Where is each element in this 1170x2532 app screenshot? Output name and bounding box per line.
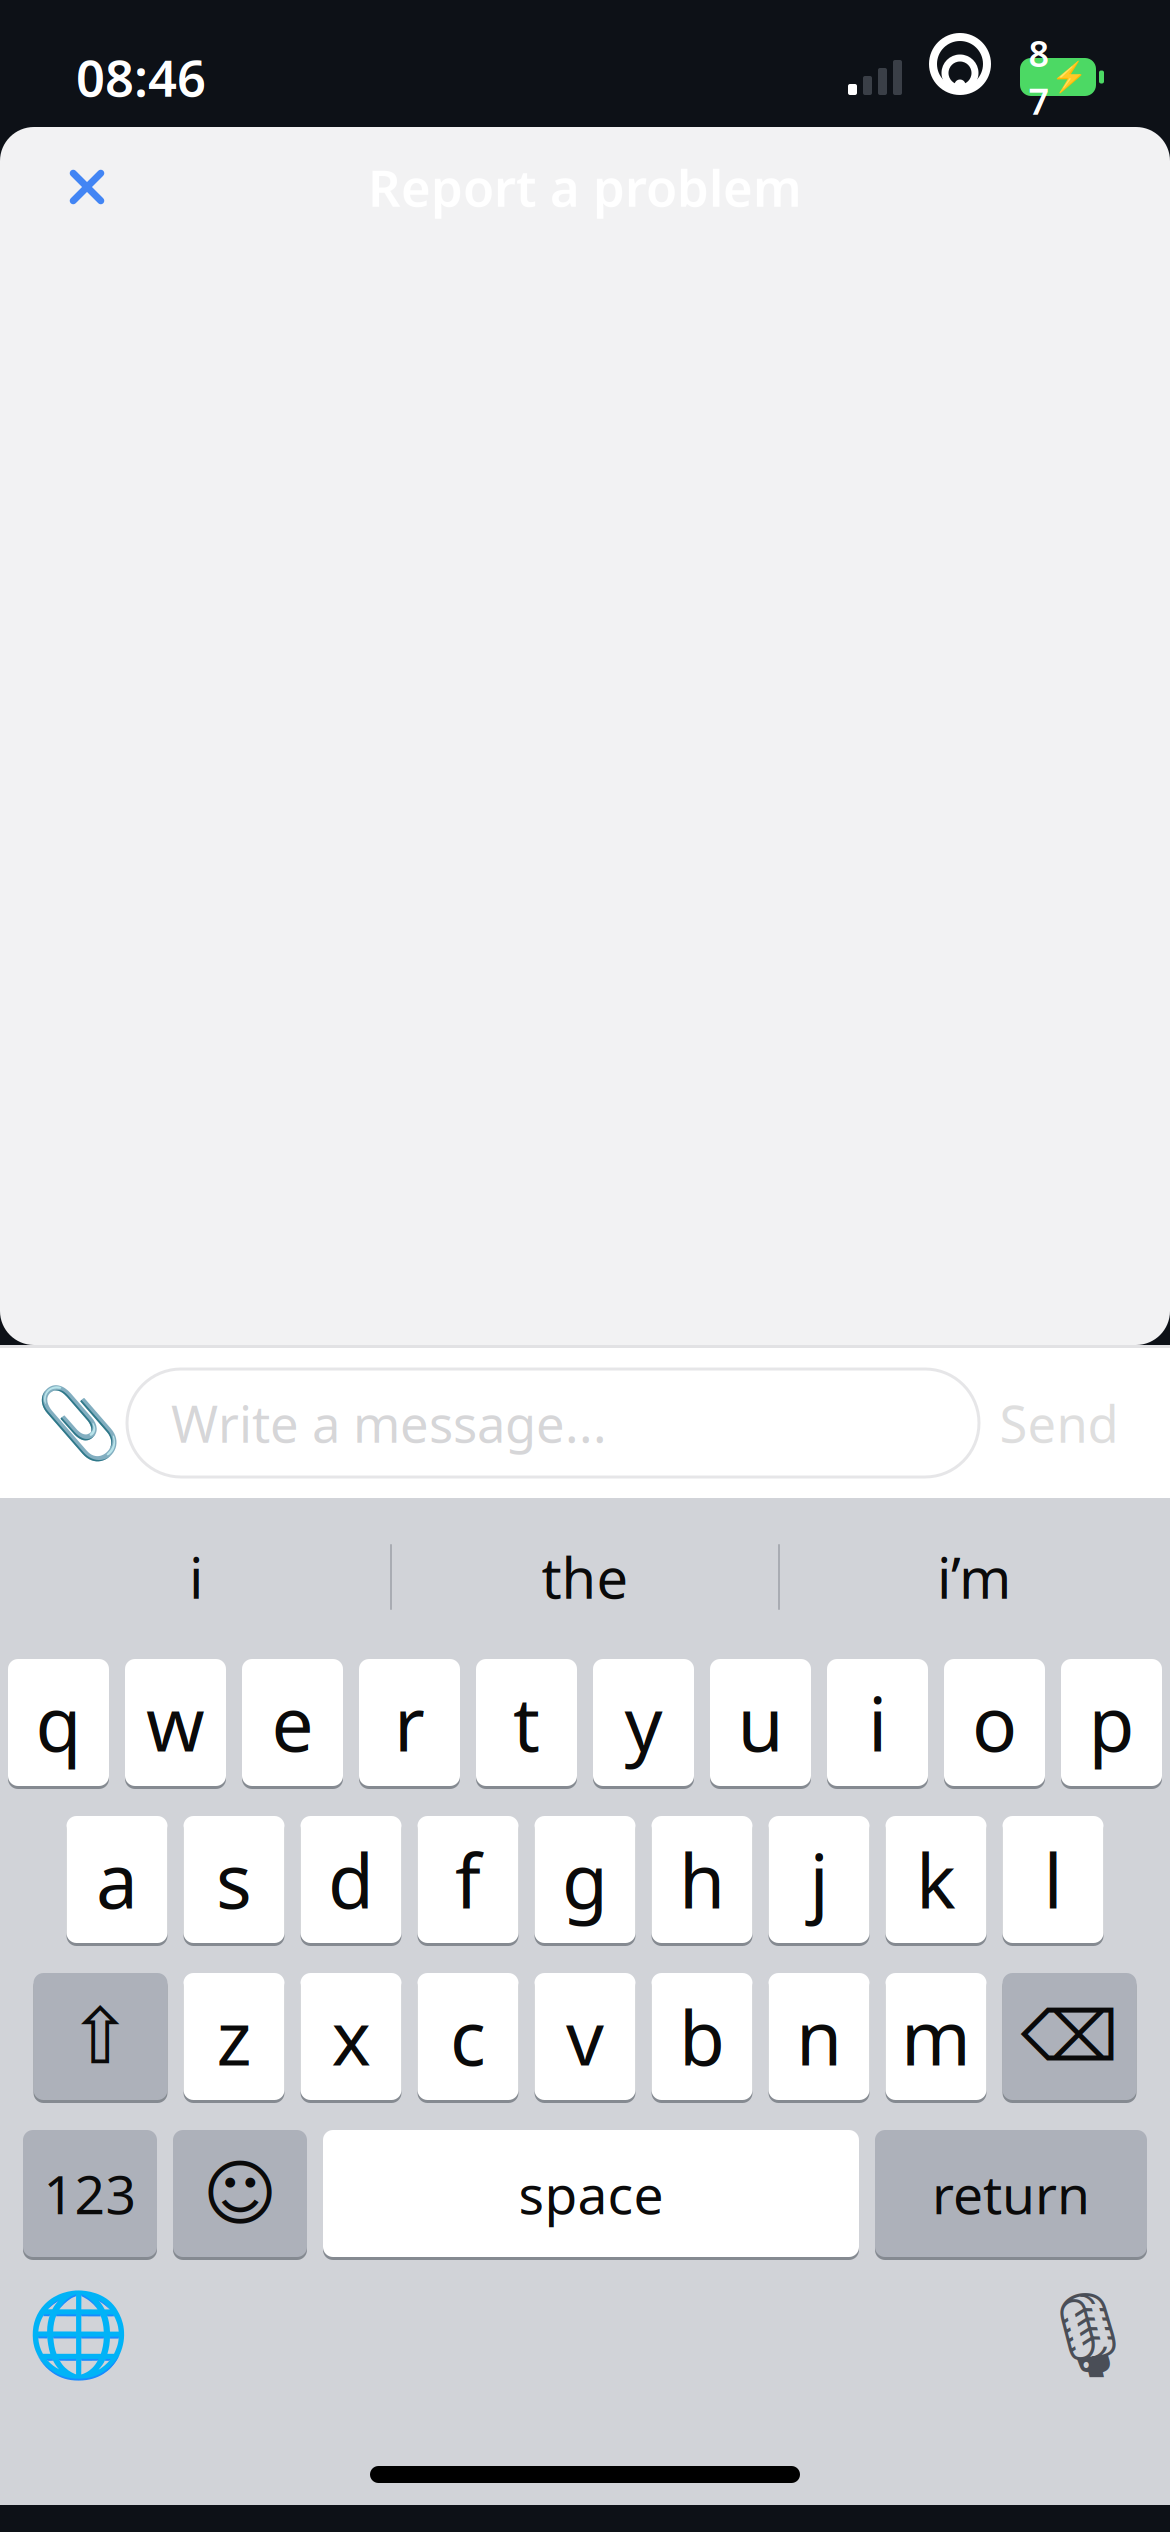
button[interactable]: d xyxy=(300,1813,401,1946)
button[interactable]: q xyxy=(8,1656,109,1789)
staticText: Send xyxy=(999,1389,1118,1457)
staticText: 📎 xyxy=(36,1383,122,1463)
button[interactable]: Attach file xyxy=(31,1375,127,1471)
staticText: l xyxy=(1043,1830,1062,1929)
button[interactable]: r xyxy=(359,1656,460,1789)
button[interactable]: o xyxy=(944,1656,1045,1789)
staticText: z xyxy=(216,1987,251,2086)
staticText: space xyxy=(518,2158,663,2229)
staticText: b xyxy=(679,1987,725,2086)
button[interactable]: Dictate xyxy=(1028,2275,1148,2395)
button[interactable]: x xyxy=(300,1970,401,2103)
button[interactable]: Shift xyxy=(33,1970,167,2103)
button[interactable]: v xyxy=(534,1970,635,2103)
button[interactable]: g xyxy=(534,1813,635,1946)
staticText: a xyxy=(96,1830,138,1929)
button[interactable]: k xyxy=(885,1813,986,1946)
staticText: k xyxy=(916,1830,956,1929)
staticText: t xyxy=(513,1673,540,1772)
button[interactable]: b xyxy=(651,1970,752,2103)
button[interactable]: i’m xyxy=(780,1527,1168,1627)
staticText: w xyxy=(146,1673,205,1772)
staticText: r xyxy=(394,1673,425,1772)
staticText: Report a problem xyxy=(368,153,802,221)
staticText: Write a message... xyxy=(171,1389,607,1457)
staticText: d xyxy=(328,1830,374,1929)
button[interactable]: Delete xyxy=(1002,1970,1136,2103)
staticText: v xyxy=(566,1987,604,2086)
button[interactable]: Close xyxy=(44,144,130,230)
button[interactable]: a xyxy=(66,1813,167,1946)
button[interactable]: e xyxy=(242,1656,343,1789)
staticText: ⇧ xyxy=(68,1993,133,2080)
staticText: j xyxy=(809,1830,828,1929)
button[interactable]: Send xyxy=(979,1375,1139,1471)
staticText: n xyxy=(796,1987,842,2086)
staticText: y xyxy=(624,1673,662,1772)
staticText: ⌫ xyxy=(1020,1997,1118,2076)
button[interactable]: the xyxy=(392,1527,778,1627)
button[interactable]: t xyxy=(476,1656,577,1789)
button[interactable]: ☺ xyxy=(173,2127,307,2260)
staticText: h xyxy=(679,1830,725,1929)
staticText: 87 xyxy=(1028,29,1049,125)
button[interactable]: c xyxy=(417,1970,518,2103)
staticText: c xyxy=(450,1987,486,2086)
staticText: g xyxy=(562,1830,608,1929)
staticText: 08:46 xyxy=(76,43,206,111)
staticText: f xyxy=(455,1830,481,1929)
staticText: the xyxy=(541,1540,628,1614)
button[interactable]: Write a message... xyxy=(127,1369,979,1477)
staticText: i xyxy=(189,1540,203,1614)
button[interactable]: h xyxy=(651,1813,752,1946)
button[interactable]: return xyxy=(875,2127,1147,2260)
staticText: s xyxy=(216,1830,252,1929)
button[interactable]: i xyxy=(2,1527,390,1627)
staticText: return xyxy=(932,2158,1090,2229)
staticText: 🎙 xyxy=(1035,2288,1140,2382)
button[interactable]: l xyxy=(1002,1813,1103,1946)
button[interactable]: Change keyboard xyxy=(18,2275,138,2395)
staticText: e xyxy=(271,1673,313,1772)
button[interactable]: z xyxy=(183,1970,284,2103)
button[interactable]: p xyxy=(1061,1656,1162,1789)
button[interactable]: y xyxy=(593,1656,694,1789)
button[interactable]: m xyxy=(885,1970,986,2103)
button[interactable]: space xyxy=(323,2127,859,2260)
staticText: x xyxy=(331,1987,370,2086)
button[interactable]: n xyxy=(768,1970,869,2103)
staticText: q xyxy=(35,1673,81,1772)
button[interactable]: i xyxy=(827,1656,928,1789)
staticText: 123 xyxy=(43,2158,136,2229)
staticText: p xyxy=(1088,1673,1134,1772)
staticText: o xyxy=(972,1673,1017,1772)
button[interactable]: s xyxy=(183,1813,284,1946)
button[interactable]: u xyxy=(710,1656,811,1789)
staticText: ⚡ xyxy=(1050,60,1087,94)
staticText: i’m xyxy=(937,1540,1011,1614)
button[interactable]: f xyxy=(417,1813,518,1946)
staticText: 🌐 xyxy=(26,2288,129,2382)
button[interactable]: j xyxy=(768,1813,869,1946)
staticText: u xyxy=(737,1673,783,1772)
button[interactable]: 123 xyxy=(23,2127,157,2260)
staticText: m xyxy=(901,1987,971,2086)
staticText: ☺ xyxy=(202,2153,277,2234)
button[interactable]: w xyxy=(125,1656,226,1789)
staticText: i xyxy=(868,1673,887,1772)
